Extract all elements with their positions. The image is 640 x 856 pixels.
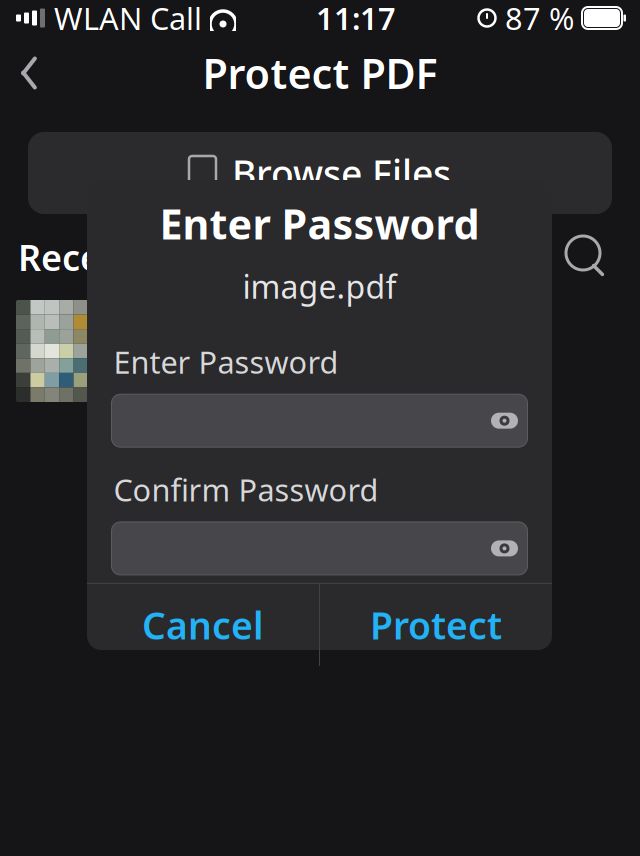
staticText: WLAN Call: [54, 0, 202, 38]
staticText: 87 %: [505, 0, 574, 38]
staticText: Recents: [18, 233, 157, 281]
staticText: Cancel: [142, 600, 264, 650]
button[interactable]: Browse Files: [28, 132, 612, 214]
button[interactable]: Recent document: [16, 300, 88, 402]
button[interactable]: Show password: [481, 395, 527, 447]
button[interactable]: Cancel: [87, 584, 319, 666]
button[interactable]: Show password: [481, 522, 527, 574]
staticText: Enter Password: [159, 196, 479, 251]
staticText: 11:17: [316, 0, 396, 38]
staticText: Browse Files: [232, 148, 451, 198]
staticText: Enter Password: [113, 341, 338, 382]
staticText: Confirm Password: [113, 469, 378, 510]
staticText: Protect: [370, 600, 502, 650]
staticText: image.pdf: [242, 265, 396, 307]
button[interactable]: Protect: [320, 584, 552, 666]
button[interactable]: Search: [556, 227, 616, 287]
button[interactable]: Back: [2, 46, 56, 100]
staticText: Protect PDF: [202, 46, 437, 100]
